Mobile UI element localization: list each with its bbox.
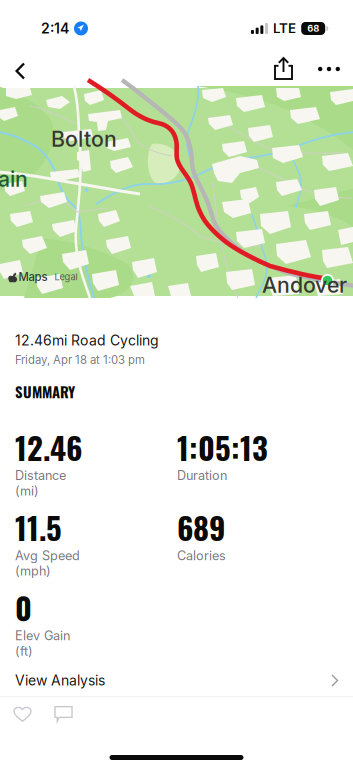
staticText: (mi): [15, 483, 39, 498]
staticText: Duration: [177, 468, 227, 483]
staticText: SUMMARY: [15, 381, 75, 402]
button[interactable]: More options: [307, 47, 353, 91]
staticText: 2:14: [41, 20, 69, 37]
button[interactable]: View Analysis: [0, 665, 353, 696]
staticText: (ft): [15, 643, 33, 659]
staticText: 68: [307, 23, 319, 34]
staticText: 689: [177, 504, 225, 550]
staticText: Distance: [15, 468, 66, 483]
staticText: ain: [0, 166, 28, 192]
staticText: Calories: [177, 548, 226, 563]
staticText: 12.46mi Road Cycling: [15, 332, 159, 349]
staticText: Andover: [262, 272, 347, 298]
staticText: Maps: [18, 270, 47, 284]
staticText: (mph): [15, 563, 51, 579]
button[interactable]: Comment: [54, 697, 73, 730]
button[interactable]: Share: [264, 47, 307, 91]
staticText: Friday, Apr 18 at 1:03 pm: [15, 353, 145, 367]
staticText: View Analysis: [15, 672, 105, 689]
staticText: 1:05:13: [177, 424, 268, 470]
staticText: Bolton: [51, 126, 117, 152]
staticText: 11.5: [15, 504, 62, 550]
staticText: Elev Gain: [15, 628, 70, 643]
staticText: Avg Speed: [15, 548, 80, 563]
button[interactable]: Back: [0, 47, 43, 91]
staticText: 12.46: [15, 424, 82, 470]
staticText: Legal: [54, 271, 77, 282]
staticText: LTE: [273, 20, 296, 36]
staticText: 0: [15, 585, 32, 630]
button[interactable]: Like: [13, 697, 32, 730]
